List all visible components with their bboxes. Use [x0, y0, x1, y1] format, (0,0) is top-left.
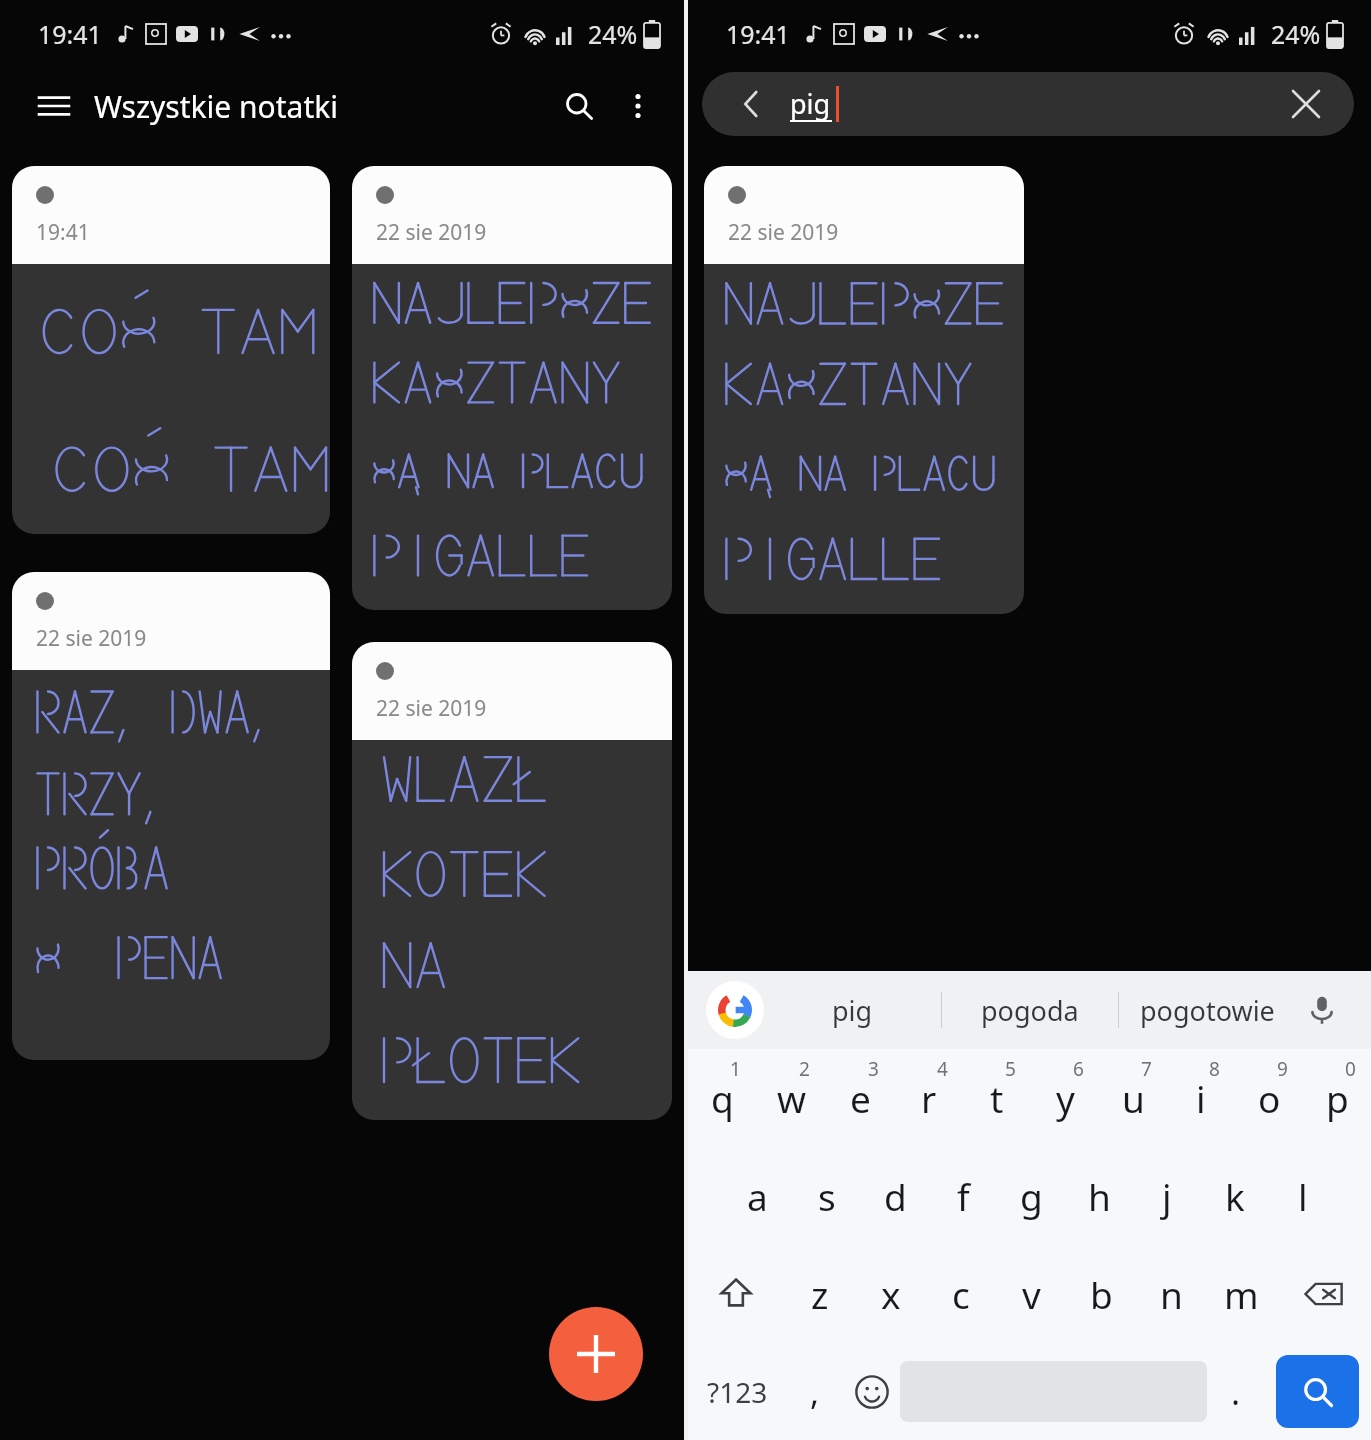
- staticText: s: [818, 1171, 836, 1221]
- button[interactable]: x: [855, 1245, 926, 1343]
- button[interactable]: .: [1207, 1343, 1264, 1440]
- button[interactable]: h: [1065, 1147, 1133, 1245]
- staticText: .: [1231, 1369, 1241, 1415]
- button[interactable]: Search: [1276, 1355, 1359, 1428]
- button[interactable]: Shift: [688, 1245, 784, 1343]
- button[interactable]: a: [723, 1147, 792, 1245]
- button[interactable]: w: [757, 1049, 826, 1147]
- button[interactable]: ,: [787, 1343, 843, 1440]
- staticText: 1: [730, 1056, 741, 1082]
- staticText: 2: [799, 1056, 810, 1082]
- button[interactable]: More options: [610, 78, 666, 134]
- button[interactable]: pogotowie: [1119, 971, 1295, 1049]
- staticText: j: [1162, 1171, 1172, 1221]
- staticText: z: [811, 1269, 829, 1319]
- button[interactable]: v: [996, 1245, 1066, 1343]
- button[interactable]: d: [861, 1147, 929, 1245]
- staticText: ?123: [707, 1373, 768, 1411]
- button[interactable]: p: [1303, 1049, 1371, 1147]
- staticText: n: [1160, 1269, 1183, 1319]
- button[interactable]: i: [1167, 1049, 1235, 1147]
- staticText: l: [1298, 1171, 1308, 1221]
- staticText: r: [921, 1073, 937, 1123]
- button[interactable]: o: [1235, 1049, 1303, 1147]
- staticText: v: [1022, 1269, 1041, 1319]
- staticText: g: [1020, 1171, 1043, 1221]
- staticText: 4: [937, 1056, 948, 1082]
- staticText: p: [1326, 1073, 1349, 1123]
- staticText: u: [1122, 1073, 1145, 1123]
- button[interactable]: Search: [548, 75, 610, 137]
- staticText: 24%: [1271, 17, 1321, 51]
- button[interactable]: pig: [764, 971, 941, 1049]
- button[interactable]: 19:41: [12, 166, 330, 534]
- button[interactable]: l: [1269, 1147, 1337, 1245]
- staticText: 22 sie 2019: [376, 694, 487, 723]
- staticText: ,: [810, 1369, 820, 1415]
- staticText: w: [777, 1073, 807, 1123]
- staticText: f: [957, 1171, 970, 1221]
- staticText: m: [1224, 1269, 1259, 1319]
- button[interactable]: pogoda: [942, 971, 1118, 1049]
- button[interactable]: 22 sie 2019: [704, 166, 1024, 614]
- button[interactable]: s: [792, 1147, 861, 1245]
- staticText: 22 sie 2019: [376, 218, 487, 247]
- staticText: c: [952, 1269, 970, 1319]
- button[interactable]: Clear search: [1284, 82, 1328, 126]
- button[interactable]: ?123: [688, 1343, 787, 1440]
- staticText: 9: [1277, 1056, 1288, 1082]
- button[interactable]: f: [929, 1147, 997, 1245]
- button[interactable]: 22 sie 2019: [352, 642, 672, 1120]
- staticText: q: [711, 1073, 734, 1123]
- button[interactable]: z: [784, 1245, 855, 1343]
- staticText: b: [1090, 1269, 1113, 1319]
- button[interactable]: k: [1201, 1147, 1269, 1245]
- button[interactable]: Emoji: [843, 1343, 900, 1440]
- staticText: 19:41: [726, 17, 790, 51]
- button[interactable]: 22 sie 2019: [352, 166, 672, 610]
- button[interactable]: Backspace: [1276, 1245, 1371, 1343]
- button[interactable]: Back: [702, 72, 1354, 136]
- staticText: pig: [790, 85, 831, 122]
- button[interactable]: t: [963, 1049, 1031, 1147]
- button[interactable]: r: [895, 1049, 963, 1147]
- staticText: e: [850, 1073, 871, 1123]
- staticText: i: [1196, 1073, 1206, 1123]
- button[interactable]: e: [826, 1049, 895, 1147]
- button[interactable]: b: [1066, 1245, 1136, 1343]
- staticText: 8: [1209, 1056, 1220, 1082]
- button[interactable]: u: [1099, 1049, 1167, 1147]
- staticText: 7: [1141, 1056, 1152, 1082]
- staticText: Wszystkie notatki: [94, 86, 338, 127]
- staticText: pig: [832, 992, 873, 1029]
- button[interactable]: Create note: [549, 1307, 643, 1401]
- staticText: h: [1088, 1171, 1111, 1221]
- staticText: o: [1258, 1073, 1281, 1123]
- staticText: a: [747, 1171, 768, 1221]
- button[interactable]: 22 sie 2019: [12, 572, 330, 1060]
- staticText: d: [884, 1171, 907, 1221]
- button[interactable]: j: [1133, 1147, 1201, 1245]
- staticText: 19:41: [38, 17, 102, 51]
- staticText: 3: [868, 1056, 879, 1082]
- staticText: 22 sie 2019: [728, 218, 839, 247]
- button[interactable]: Google: [706, 981, 764, 1039]
- button[interactable]: Open navigation menu: [26, 78, 82, 134]
- button[interactable]: m: [1206, 1245, 1276, 1343]
- staticText: k: [1225, 1171, 1245, 1221]
- staticText: 24%: [588, 17, 638, 51]
- button[interactable]: y: [1031, 1049, 1099, 1147]
- button[interactable]: Voice input: [1295, 983, 1349, 1037]
- button[interactable]: Back: [732, 84, 772, 124]
- staticText: t: [990, 1073, 1004, 1123]
- staticText: pogoda: [981, 992, 1079, 1029]
- button[interactable]: c: [926, 1245, 996, 1343]
- staticText: 22 sie 2019: [36, 624, 147, 653]
- staticText: 6: [1073, 1056, 1084, 1082]
- button[interactable]: n: [1136, 1245, 1206, 1343]
- button[interactable]: q: [688, 1049, 757, 1147]
- staticText: pogotowie: [1140, 992, 1275, 1029]
- staticText: y: [1056, 1073, 1075, 1123]
- button[interactable]: g: [997, 1147, 1065, 1245]
